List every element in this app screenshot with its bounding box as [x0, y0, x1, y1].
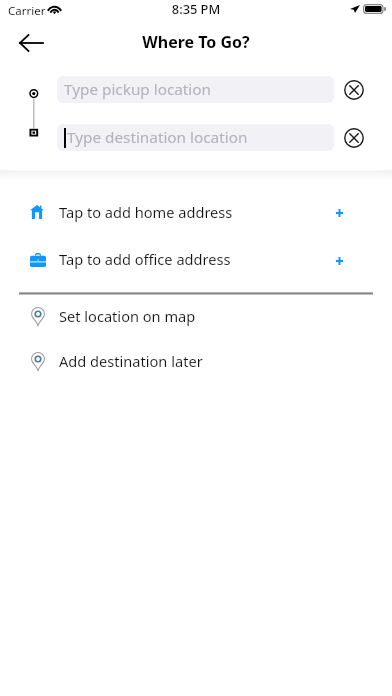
button[interactable]: Tap to add home address: [0, 195, 392, 231]
staticText: Carrier: [8, 3, 46, 19]
staticText: Type pickup location: [64, 79, 212, 100]
button[interactable]: Back: [12, 23, 52, 63]
button[interactable]: Type pickup location: [57, 76, 334, 103]
button[interactable]: Add destination later: [0, 344, 392, 379]
staticText: Tap to add office address: [59, 249, 231, 269]
button[interactable]: Type destination location: [57, 124, 334, 151]
button[interactable]: Clear text: [341, 76, 367, 103]
button[interactable]: Tap to add office address: [0, 243, 392, 279]
button[interactable]: Set location on map: [0, 299, 392, 334]
staticText: Type destination location: [67, 127, 248, 148]
staticText: Add destination later: [59, 351, 203, 371]
button[interactable]: Clear text: [341, 124, 367, 151]
staticText: Where To Go?: [0, 31, 392, 53]
staticText: 8:35 PM: [0, 0, 392, 17]
staticText: Tap to add home address: [59, 202, 233, 222]
staticText: Set location on map: [59, 306, 196, 326]
